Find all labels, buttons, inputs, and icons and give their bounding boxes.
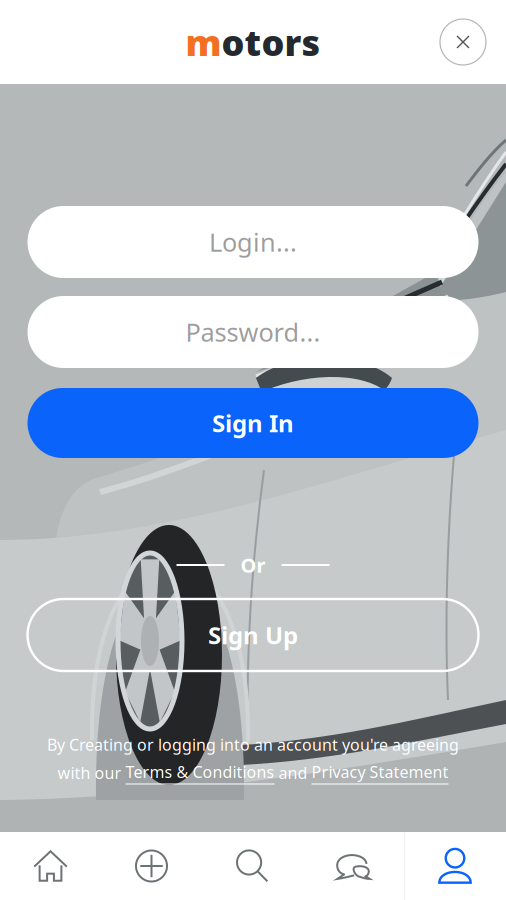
button[interactable]: Home: [0, 832, 101, 900]
button[interactable]: Profile: [404, 832, 506, 900]
staticText: Sign In: [212, 407, 294, 439]
staticText: By Creating or logging into an account y…: [47, 734, 459, 755]
staticText: Terms & Conditions: [125, 761, 274, 782]
staticText: and: [274, 762, 311, 783]
button[interactable]: Sign Up: [27, 599, 478, 671]
button[interactable]: Add: [101, 832, 202, 900]
staticText: otors: [221, 18, 320, 66]
button[interactable]: Sign In: [27, 388, 478, 458]
staticText: Password...: [185, 315, 320, 349]
staticText: Or: [240, 552, 265, 578]
button[interactable]: Login...: [27, 206, 478, 278]
staticText: Login...: [209, 225, 297, 259]
button[interactable]: Close: [440, 19, 486, 65]
button[interactable]: Password...: [27, 296, 478, 368]
staticText: m: [185, 18, 221, 66]
button[interactable]: Messages: [303, 832, 404, 900]
staticText: Sign Up: [208, 619, 298, 651]
staticText: Privacy Statement: [311, 761, 448, 782]
staticText: with our: [57, 762, 125, 783]
button[interactable]: Search: [202, 832, 303, 900]
